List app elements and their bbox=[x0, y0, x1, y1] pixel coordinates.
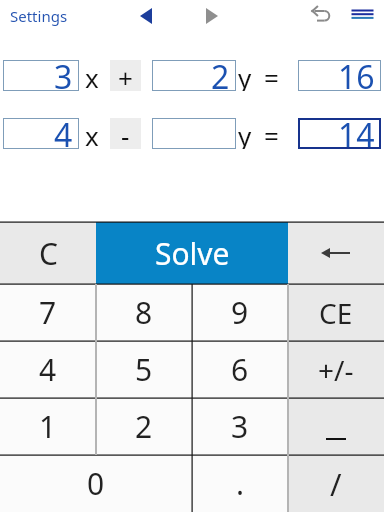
button[interactable] bbox=[134, 4, 158, 28]
button[interactable] bbox=[306, 2, 334, 28]
button[interactable]: + bbox=[110, 60, 141, 91]
staticText: + bbox=[118, 60, 133, 91]
staticText: 0 bbox=[87, 463, 105, 504]
staticText: +/- bbox=[318, 351, 354, 389]
button[interactable]: 2 bbox=[152, 60, 236, 91]
staticText: 7 bbox=[39, 292, 57, 333]
button[interactable]: / bbox=[288, 455, 384, 512]
button[interactable]: Settings bbox=[10, 6, 68, 26]
staticText: 3 bbox=[231, 406, 249, 447]
button[interactable]: - bbox=[110, 118, 141, 149]
button[interactable]: Solve bbox=[96, 222, 288, 284]
staticText: 9 bbox=[231, 292, 249, 333]
button[interactable]: 16 bbox=[298, 60, 381, 91]
button[interactable] bbox=[152, 118, 236, 149]
staticText: x bbox=[85, 118, 99, 149]
button[interactable]: 8 bbox=[96, 284, 192, 341]
staticText: 14 bbox=[338, 113, 375, 155]
button[interactable]: 9 bbox=[192, 284, 288, 341]
staticText: Solve bbox=[155, 233, 230, 274]
staticText: 1 bbox=[39, 406, 57, 447]
button[interactable]: 14 bbox=[298, 118, 381, 149]
staticText: 8 bbox=[135, 292, 153, 333]
staticText: - bbox=[121, 118, 130, 149]
button[interactable]: 1 bbox=[0, 398, 96, 455]
staticText: 3 bbox=[54, 55, 73, 97]
button[interactable] bbox=[288, 398, 384, 455]
staticText: / bbox=[330, 463, 342, 505]
button[interactable]: 5 bbox=[96, 341, 192, 398]
staticText: 4 bbox=[39, 349, 57, 390]
staticText: 5 bbox=[135, 349, 153, 390]
button[interactable]: 7 bbox=[0, 284, 96, 341]
button[interactable]: +/- bbox=[288, 341, 384, 398]
button[interactable]: 4 bbox=[3, 118, 79, 149]
staticText: 16 bbox=[338, 55, 375, 97]
staticText: CE bbox=[319, 294, 353, 332]
button[interactable] bbox=[200, 4, 224, 28]
button[interactable] bbox=[288, 222, 384, 284]
button[interactable]: 6 bbox=[192, 341, 288, 398]
staticText: . bbox=[236, 463, 245, 504]
button[interactable]: 4 bbox=[0, 341, 96, 398]
button[interactable]: C bbox=[0, 222, 96, 284]
button[interactable] bbox=[349, 7, 377, 23]
staticText: C bbox=[39, 233, 58, 274]
button[interactable]: . bbox=[192, 455, 288, 512]
staticText: 6 bbox=[231, 349, 249, 390]
button[interactable]: 0 bbox=[0, 455, 192, 512]
staticText: y bbox=[238, 118, 252, 149]
staticText: Settings bbox=[10, 6, 68, 26]
staticText: y bbox=[238, 60, 252, 91]
button[interactable]: 2 bbox=[96, 398, 192, 455]
button[interactable]: 3 bbox=[192, 398, 288, 455]
button[interactable]: 3 bbox=[3, 60, 79, 91]
staticText: x bbox=[85, 60, 99, 91]
staticText: = bbox=[264, 60, 279, 91]
staticText: 2 bbox=[135, 406, 153, 447]
staticText: 2 bbox=[211, 55, 230, 97]
button[interactable]: CE bbox=[288, 284, 384, 341]
staticText: = bbox=[264, 118, 279, 149]
staticText: 4 bbox=[54, 113, 73, 155]
